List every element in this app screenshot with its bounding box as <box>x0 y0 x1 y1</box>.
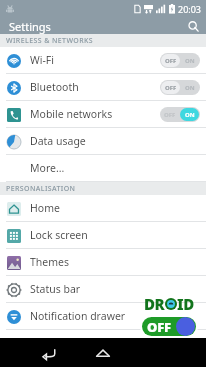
staticText: OFF <box>164 111 176 119</box>
button[interactable]: Toggle off <box>160 53 200 68</box>
staticText: Mobile networks <box>30 107 113 121</box>
button[interactable]: Mobile networks <box>0 101 206 128</box>
staticText: Notification drawer <box>30 309 126 323</box>
staticText: OFF <box>164 84 176 92</box>
staticText: Lock screen <box>30 228 88 242</box>
button[interactable]: Droid Off widget <box>140 294 198 338</box>
button[interactable]: Bluetooth <box>0 74 206 101</box>
button[interactable]: Toggle on <box>160 107 200 122</box>
staticText: ON <box>185 111 195 119</box>
staticText: Status bar <box>30 282 81 296</box>
button[interactable]: Toggle off <box>160 80 200 95</box>
staticText: Wi-Fi <box>30 53 55 67</box>
staticText: WIRELESS & NETWORKS <box>6 36 94 46</box>
button[interactable]: Lock screen <box>0 222 206 249</box>
button[interactable]: Home <box>0 195 206 222</box>
button[interactable]: Themes <box>0 249 206 276</box>
staticText: Themes <box>30 255 70 269</box>
staticText: ON <box>185 111 195 119</box>
staticText: Data usage <box>30 134 86 148</box>
button[interactable]: Wi-Fi <box>0 47 206 74</box>
staticText: OFF <box>147 318 171 336</box>
staticText: ID <box>177 294 194 314</box>
staticText: OFF <box>164 57 176 65</box>
staticText: OFF <box>165 57 177 65</box>
button[interactable]: Status bar <box>0 276 206 303</box>
button[interactable]: Back <box>22 338 76 367</box>
button[interactable]: Data usage <box>0 128 206 155</box>
staticText: DR <box>144 294 165 314</box>
staticText: PERSONALISATION <box>6 184 76 194</box>
staticText: 20:03 <box>178 3 202 15</box>
button[interactable]: Notification drawer <box>0 303 206 330</box>
button[interactable]: More... <box>0 155 206 182</box>
staticText: ON <box>185 57 195 65</box>
staticText: OFF <box>165 84 177 92</box>
button[interactable]: Search <box>186 19 200 33</box>
staticText: Home <box>30 201 60 215</box>
staticText: More... <box>30 161 65 175</box>
staticText: Settings <box>9 19 51 34</box>
button[interactable]: Home <box>76 338 130 367</box>
staticText: ON <box>185 84 195 92</box>
staticText: Bluetooth <box>30 80 79 94</box>
